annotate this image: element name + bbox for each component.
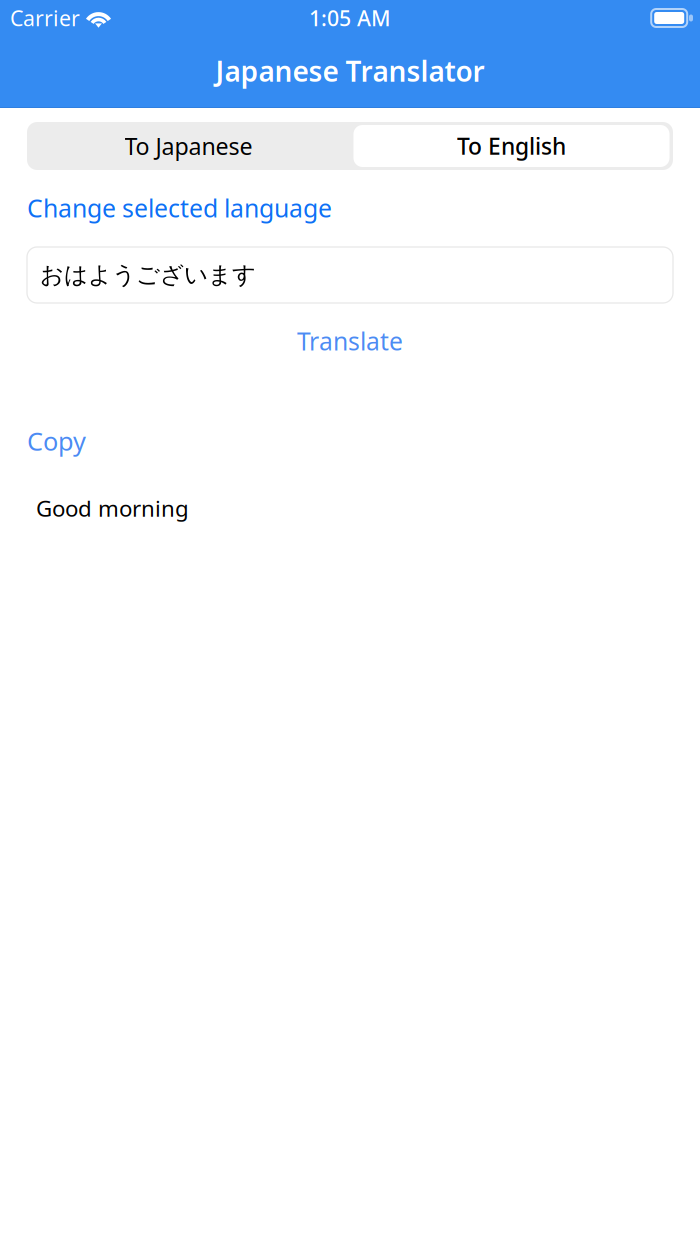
staticText: To Japanese bbox=[124, 130, 252, 162]
button[interactable]: Change selected language bbox=[27, 193, 332, 223]
button[interactable]: Copy bbox=[27, 426, 86, 456]
staticText: To English bbox=[457, 130, 566, 162]
staticText: おはようございます bbox=[40, 260, 256, 290]
button[interactable]: To English bbox=[350, 122, 673, 170]
staticText: Change selected language bbox=[27, 191, 332, 225]
staticText: Copy bbox=[27, 424, 86, 458]
staticText: Japanese Translator bbox=[215, 52, 484, 90]
staticText: Carrier bbox=[10, 4, 80, 32]
staticText: Translate bbox=[297, 324, 403, 358]
staticText: Good morning bbox=[36, 493, 189, 523]
button[interactable]: To Japanese bbox=[27, 122, 350, 170]
staticText: 1:05 AM bbox=[309, 4, 391, 32]
button[interactable]: Translate bbox=[27, 326, 673, 356]
